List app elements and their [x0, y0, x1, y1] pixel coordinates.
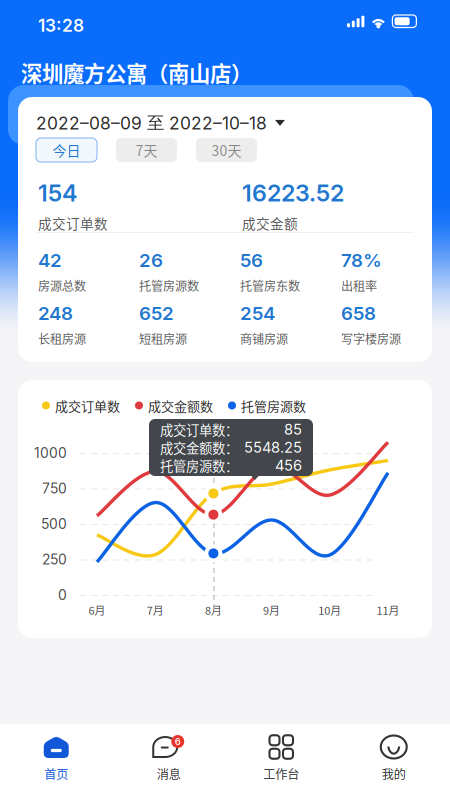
staticText: 7天 [135, 140, 157, 160]
staticText: 42 [38, 249, 62, 272]
button[interactable]: 深圳魔方公寓（南山店） [19, 57, 254, 88]
staticText: 7月 [147, 602, 164, 618]
staticText: 652 [139, 302, 174, 325]
button[interactable]: 6 [112, 724, 225, 800]
staticText: 26 [139, 249, 163, 272]
staticText: 成交金额数 [148, 396, 213, 415]
staticText: 托管房源数 [241, 396, 306, 415]
staticText: 500 [41, 516, 67, 532]
staticText: 5548.25 [244, 439, 302, 456]
staticText: 写字楼房源 [341, 330, 401, 347]
staticText: 16223.52 [242, 179, 344, 207]
staticText: 长租房源 [38, 330, 86, 347]
staticText: 250 [42, 551, 67, 568]
button[interactable]: 2022–08–09 至 2022–10–18 [32, 108, 289, 138]
staticText: 深圳魔方公寓（南山店） [21, 57, 252, 88]
staticText: 消息 [157, 765, 181, 783]
staticText: 6月 [88, 602, 105, 618]
staticText: 今日 [52, 140, 80, 160]
staticText: 成交订单数 [38, 213, 108, 233]
staticText: 我的 [382, 765, 406, 783]
staticText: 750 [42, 480, 67, 497]
staticText: 254 [240, 302, 275, 325]
staticText: 9月 [263, 602, 280, 618]
staticText: 2022–08–09 至 2022–10–18 [36, 112, 267, 134]
staticText: 托管房源数 [139, 277, 199, 294]
staticText: 1000 [34, 445, 67, 461]
staticText: 商铺房源 [240, 330, 288, 347]
staticText: 13:28 [38, 15, 84, 36]
button[interactable]: 30天 [196, 138, 257, 162]
staticText: 短租房源 [139, 330, 187, 347]
staticText: 10月 [318, 602, 341, 618]
button[interactable]: 我的 [337, 724, 450, 800]
staticText: 成交订单数 [55, 396, 120, 415]
staticText: 78% [341, 249, 382, 272]
staticText: 11月 [376, 602, 399, 618]
staticText: 456 [275, 457, 302, 474]
staticText: 658 [341, 302, 376, 325]
staticText: 85 [284, 421, 302, 438]
staticText: 248 [38, 302, 73, 325]
staticText: 房源总数 [38, 277, 86, 294]
staticText: 首页 [44, 765, 68, 783]
staticText: 成交订单数： [160, 420, 238, 439]
staticText: 成交金额数： [160, 438, 238, 457]
staticText: 154 [38, 179, 77, 207]
staticText: 托管房东数 [240, 277, 300, 294]
button[interactable]: 工作台 [225, 724, 337, 800]
staticText: 成交金额 [242, 213, 298, 233]
staticText: 0 [58, 587, 67, 603]
staticText: 56 [240, 249, 263, 272]
staticText: 8月 [205, 602, 222, 618]
staticText: 托管房源数： [160, 456, 238, 475]
button[interactable]: 今日 [36, 138, 97, 162]
staticText: 6 [175, 736, 181, 747]
staticText: 工作台 [263, 765, 299, 783]
button[interactable]: 首页 [0, 724, 112, 800]
staticText: 30天 [211, 140, 241, 160]
button[interactable]: 7天 [116, 138, 177, 162]
staticText: 出租率 [341, 277, 377, 294]
